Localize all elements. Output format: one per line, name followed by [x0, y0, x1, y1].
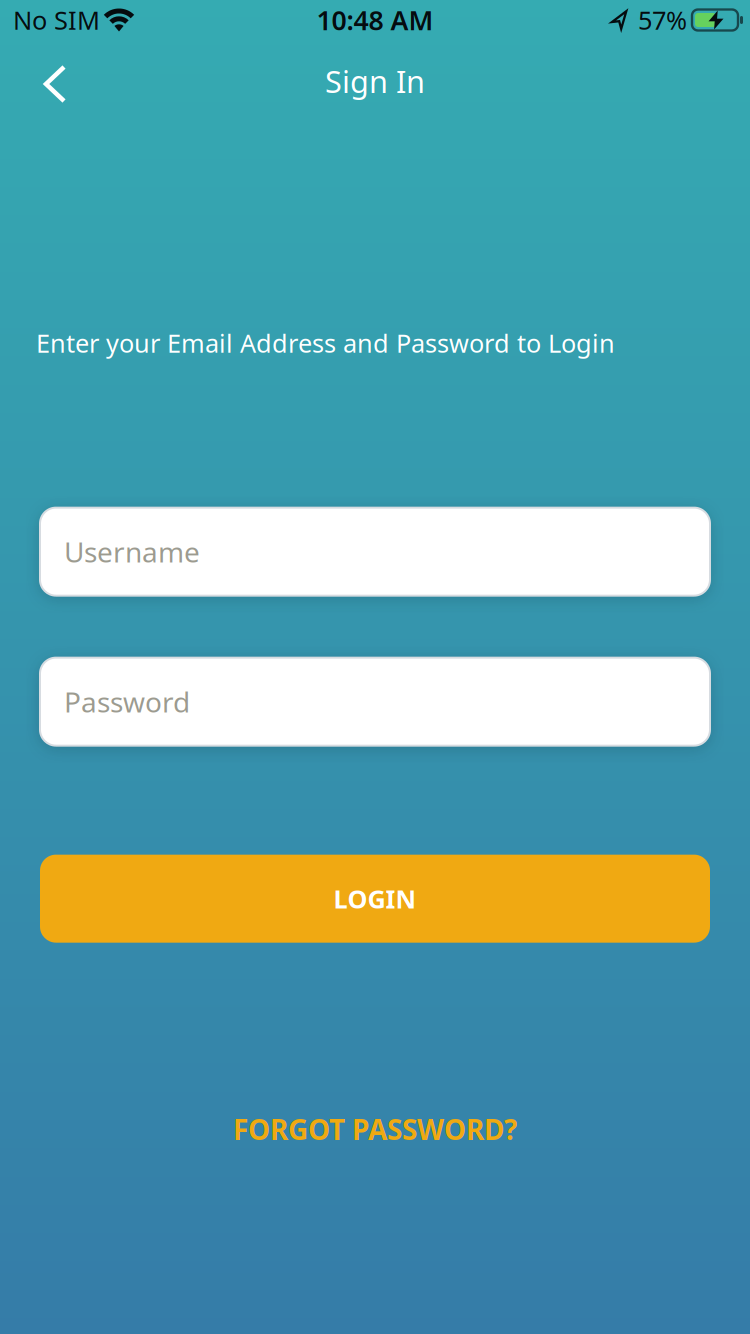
staticText: Sign In [325, 61, 425, 101]
button[interactable]: Back [0, 47, 88, 121]
staticText: No SIM [13, 3, 100, 37]
staticText: Password [64, 683, 190, 720]
staticText: 57% [638, 3, 687, 37]
textField[interactable]: Password [64, 683, 710, 720]
staticText: LOGIN [333, 882, 416, 915]
staticText: 10:48 AM [316, 2, 433, 38]
staticText: Enter your Email Address and Password to… [36, 326, 615, 360]
staticText: Username [64, 533, 200, 570]
staticText: FORGOT PASSWORD? [233, 1111, 517, 1148]
button[interactable]: LOGIN [40, 855, 710, 943]
textField[interactable]: Username [64, 533, 710, 570]
button[interactable]: FORGOT PASSWORD? [233, 1111, 517, 1148]
